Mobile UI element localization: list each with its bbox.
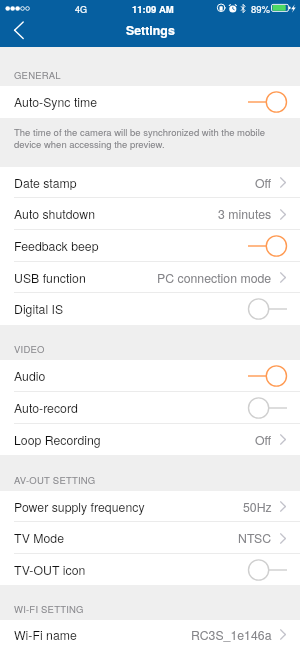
button[interactable]: Wi-Fi name bbox=[0, 620, 300, 649]
staticText: Loop Recording bbox=[14, 431, 101, 449]
staticText: 4G bbox=[75, 3, 88, 16]
staticText: NTSC bbox=[238, 529, 272, 547]
staticText: Off bbox=[255, 431, 272, 449]
staticText: Off bbox=[255, 174, 272, 192]
staticText: Digital IS bbox=[14, 300, 64, 318]
staticText: 50Hz bbox=[243, 498, 272, 516]
button[interactable]: TV Mode bbox=[0, 522, 300, 554]
button[interactable]: Date stamp bbox=[0, 167, 300, 198]
button[interactable]: Auto-Sync time bbox=[0, 86, 300, 118]
staticText: PC connection mode bbox=[157, 269, 272, 287]
staticText: The time of the camera will be synchroni… bbox=[14, 125, 290, 150]
button[interactable]: Back bbox=[0, 18, 36, 47]
button[interactable]: Loop Recording bbox=[0, 424, 300, 455]
button[interactable]: Auto shutdown bbox=[0, 198, 300, 230]
staticText: Power supply frequency bbox=[14, 498, 145, 516]
staticText: TV Mode bbox=[14, 529, 65, 547]
staticText: Feedback beep bbox=[14, 237, 99, 255]
staticText: 11:09 AM bbox=[132, 2, 174, 16]
staticText: 89% bbox=[251, 2, 271, 16]
staticText: VIDEO bbox=[14, 342, 45, 356]
button[interactable]: Feedback beep bbox=[0, 230, 300, 262]
staticText: Settings bbox=[126, 21, 175, 39]
staticText: Auto-record bbox=[14, 399, 78, 417]
staticText: 3 minutes bbox=[218, 205, 272, 223]
staticText: Auto-Sync time bbox=[14, 93, 98, 111]
staticText: WI-FI SETTING bbox=[14, 602, 84, 616]
button[interactable]: Power supply frequency bbox=[0, 491, 300, 522]
button[interactable]: Audio bbox=[0, 360, 300, 392]
staticText: AV-OUT SETTING bbox=[14, 473, 96, 487]
staticText: TV-OUT icon bbox=[14, 561, 86, 579]
staticText: Date stamp bbox=[14, 174, 77, 192]
staticText: Wi-Fi name bbox=[14, 626, 77, 644]
staticText: USB function bbox=[14, 269, 86, 287]
staticText: Auto shutdown bbox=[14, 205, 95, 223]
button[interactable]: Digital IS bbox=[0, 293, 300, 325]
button[interactable]: Auto-record bbox=[0, 392, 300, 424]
button[interactable]: USB function bbox=[0, 262, 300, 293]
staticText: GENERAL bbox=[14, 68, 61, 82]
staticText: Audio bbox=[14, 367, 46, 385]
button[interactable]: TV-OUT icon bbox=[0, 554, 300, 585]
staticText: RC3S_1e146a bbox=[191, 626, 272, 644]
